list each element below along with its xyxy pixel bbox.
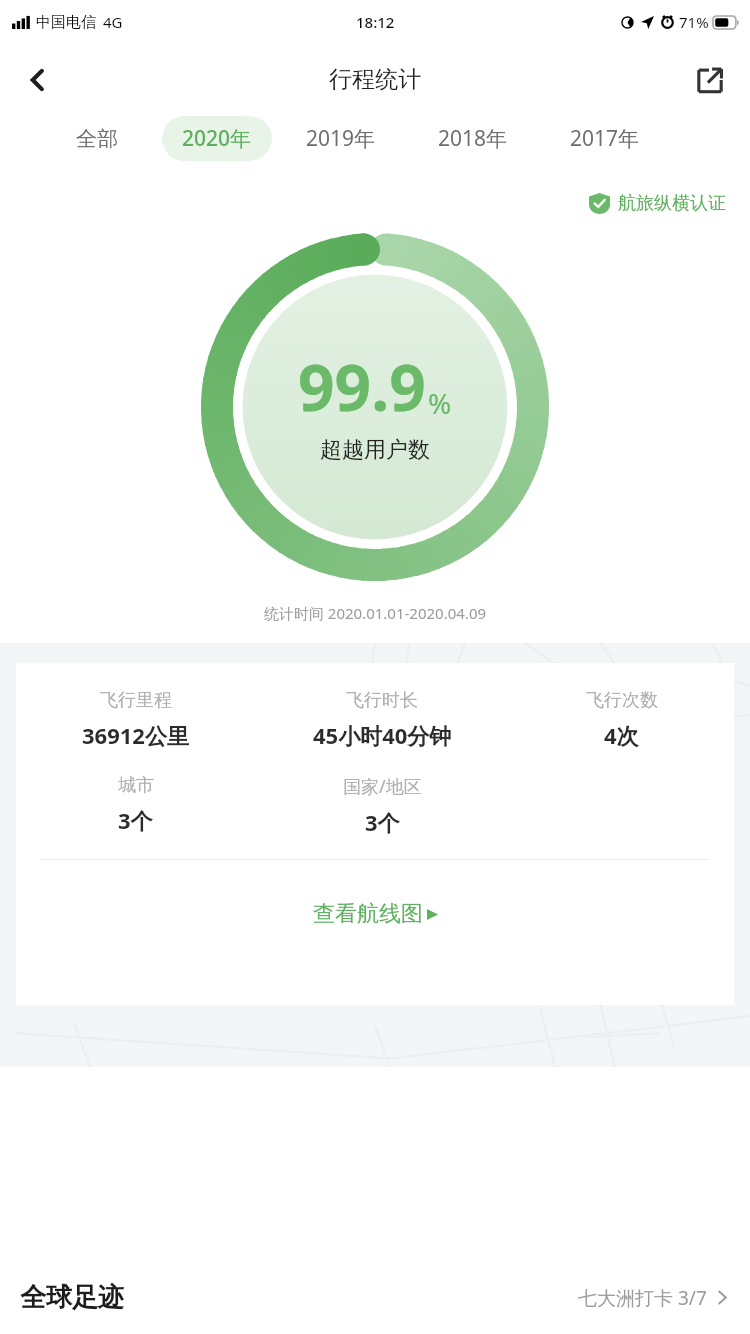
button[interactable]: 航旅纵横认证 (585, 188, 730, 219)
button[interactable]: Back (12, 54, 64, 106)
staticText: 3个 (365, 807, 400, 837)
staticText: % (428, 384, 452, 422)
staticText: 城市 (118, 774, 154, 797)
staticText: 飞行里程 (100, 689, 172, 712)
staticText: 2020年 (182, 124, 252, 153)
staticText: 飞行次数 (586, 689, 658, 712)
staticText: 统计时间 2020.01.01-2020.04.09 (0, 603, 750, 623)
button[interactable]: Share (684, 54, 736, 106)
staticText: 2018年 (438, 124, 508, 153)
button[interactable]: 全部 (56, 118, 138, 160)
staticText: 18:12 (356, 12, 395, 32)
staticText: 2017年 (570, 124, 640, 153)
button[interactable]: 2019年 (286, 116, 396, 161)
staticText: 99.9 (298, 343, 426, 430)
staticText: 航旅纵横认证 (618, 192, 726, 215)
staticText: 中国电信 (36, 13, 96, 32)
staticText: 全部 (76, 126, 118, 152)
button[interactable]: 全球足迹 (0, 1271, 750, 1320)
staticText: 行程统计 (329, 65, 421, 94)
button[interactable]: 查看航线图 (303, 894, 448, 934)
staticText: 全球足迹 (20, 1281, 124, 1314)
staticText: 飞行时长 (346, 689, 418, 712)
button[interactable]: 2020年 (162, 116, 272, 161)
staticText: 4G (103, 12, 123, 32)
staticText: 2019年 (306, 124, 376, 153)
staticText: 36912公里 (82, 720, 189, 750)
staticText: 国家/地区 (343, 774, 422, 799)
button[interactable]: 2018年 (418, 116, 528, 161)
staticText: 3个 (118, 805, 153, 835)
staticText: 45小时40分钟 (313, 720, 452, 750)
staticText: 71% (679, 12, 709, 32)
staticText: 七大洲打卡 3/7 (578, 1285, 707, 1311)
staticText: 超越用户数 (320, 436, 430, 464)
staticText: 查看航线图 (313, 900, 423, 928)
button[interactable]: 2017年 (550, 116, 660, 161)
staticText: 4次 (604, 720, 639, 750)
